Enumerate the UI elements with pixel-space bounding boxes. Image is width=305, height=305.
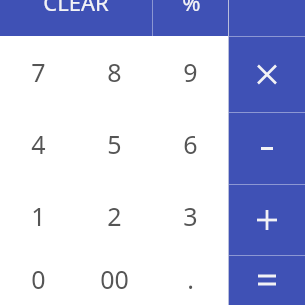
- button[interactable]: CLEAR: [0, 0, 152, 36]
- button[interactable]: Equals: [229, 256, 305, 305]
- button[interactable]: 4: [0, 108, 76, 180]
- button[interactable]: Multiply: [229, 37, 305, 112]
- button[interactable]: 00: [76, 252, 152, 305]
- staticText: %: [182, 0, 201, 17]
- button[interactable]: 9: [152, 36, 228, 108]
- button[interactable]: Add: [229, 185, 305, 255]
- staticText: 5: [107, 127, 122, 161]
- button[interactable]: 2: [76, 180, 152, 252]
- staticText: 3: [183, 199, 198, 233]
- button[interactable]: .: [152, 252, 228, 305]
- button[interactable]: 8: [76, 36, 152, 108]
- button[interactable]: 0: [0, 252, 76, 305]
- staticText: 0: [31, 262, 46, 296]
- staticText: 7: [31, 55, 46, 89]
- staticText: 9: [183, 55, 198, 89]
- button[interactable]: 1: [0, 180, 76, 252]
- button[interactable]: 3: [152, 180, 228, 252]
- staticText: 00: [100, 262, 129, 296]
- staticText: .: [187, 262, 194, 296]
- staticText: 2: [107, 199, 122, 233]
- button[interactable]: %: [153, 0, 229, 36]
- staticText: 1: [31, 199, 46, 233]
- button[interactable]: Subtract: [229, 113, 305, 184]
- staticText: 8: [107, 55, 122, 89]
- button[interactable]: 5: [76, 108, 152, 180]
- staticText: 6: [183, 127, 198, 161]
- button[interactable]: 6: [152, 108, 228, 180]
- staticText: CLEAR: [43, 0, 109, 17]
- button[interactable]: 7: [0, 36, 76, 108]
- staticText: 4: [31, 127, 46, 161]
